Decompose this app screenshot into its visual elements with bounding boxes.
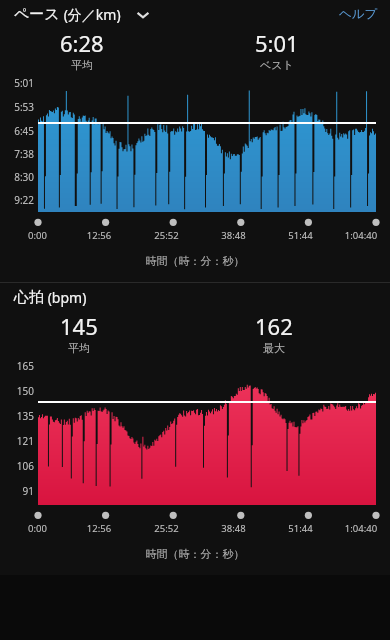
staticText: 平均 — [68, 341, 90, 355]
staticText: 91 — [4, 484, 34, 498]
staticText: 25:52 — [133, 522, 200, 535]
staticText: 5:01 — [255, 28, 299, 58]
staticText: (bpm) — [44, 288, 87, 307]
staticText: 7:38 — [4, 147, 34, 161]
staticText: 最大 — [263, 341, 285, 355]
staticText: 時間（時：分：秒） — [0, 547, 390, 561]
staticText: 150 — [4, 384, 34, 398]
staticText: 135 — [4, 409, 34, 423]
staticText: 165 — [4, 359, 34, 373]
staticText: 6:45 — [4, 124, 34, 138]
staticText: 38:48 — [200, 229, 267, 242]
staticText: 25:52 — [133, 229, 200, 242]
staticText: 0:00 — [10, 522, 65, 535]
staticText: 8:30 — [4, 170, 34, 184]
staticText: 時間（時：分：秒） — [0, 254, 390, 268]
staticText: 5:01 — [4, 76, 34, 90]
staticText: 145 — [60, 311, 98, 341]
staticText: 12:56 — [65, 522, 133, 535]
staticText: 1:04:40 — [334, 522, 388, 535]
button[interactable]: ヘルプ — [335, 4, 382, 24]
staticText: 162 — [255, 311, 293, 341]
staticText: 121 — [4, 434, 34, 448]
button[interactable]: ペース — [14, 5, 151, 24]
staticText: 51:44 — [267, 229, 334, 242]
staticText: 9:22 — [4, 193, 34, 207]
staticText: 106 — [4, 459, 34, 473]
staticText: 12:56 — [65, 229, 133, 242]
staticText: 38:48 — [200, 522, 267, 535]
staticText: ヘルプ — [339, 6, 378, 22]
button[interactable]: 心拍 — [14, 288, 87, 307]
staticText: 6:28 — [60, 28, 104, 58]
staticText: ベスト — [260, 58, 294, 72]
staticText: 平均 — [71, 58, 93, 72]
staticText: 心拍 — [14, 288, 44, 307]
staticText: 1:04:40 — [334, 229, 388, 242]
staticText: ペース — [14, 5, 60, 24]
staticText: (分／km) — [60, 5, 121, 24]
staticText: 51:44 — [267, 522, 334, 535]
staticText: 0:00 — [10, 229, 65, 242]
staticText: 5:53 — [4, 100, 34, 114]
